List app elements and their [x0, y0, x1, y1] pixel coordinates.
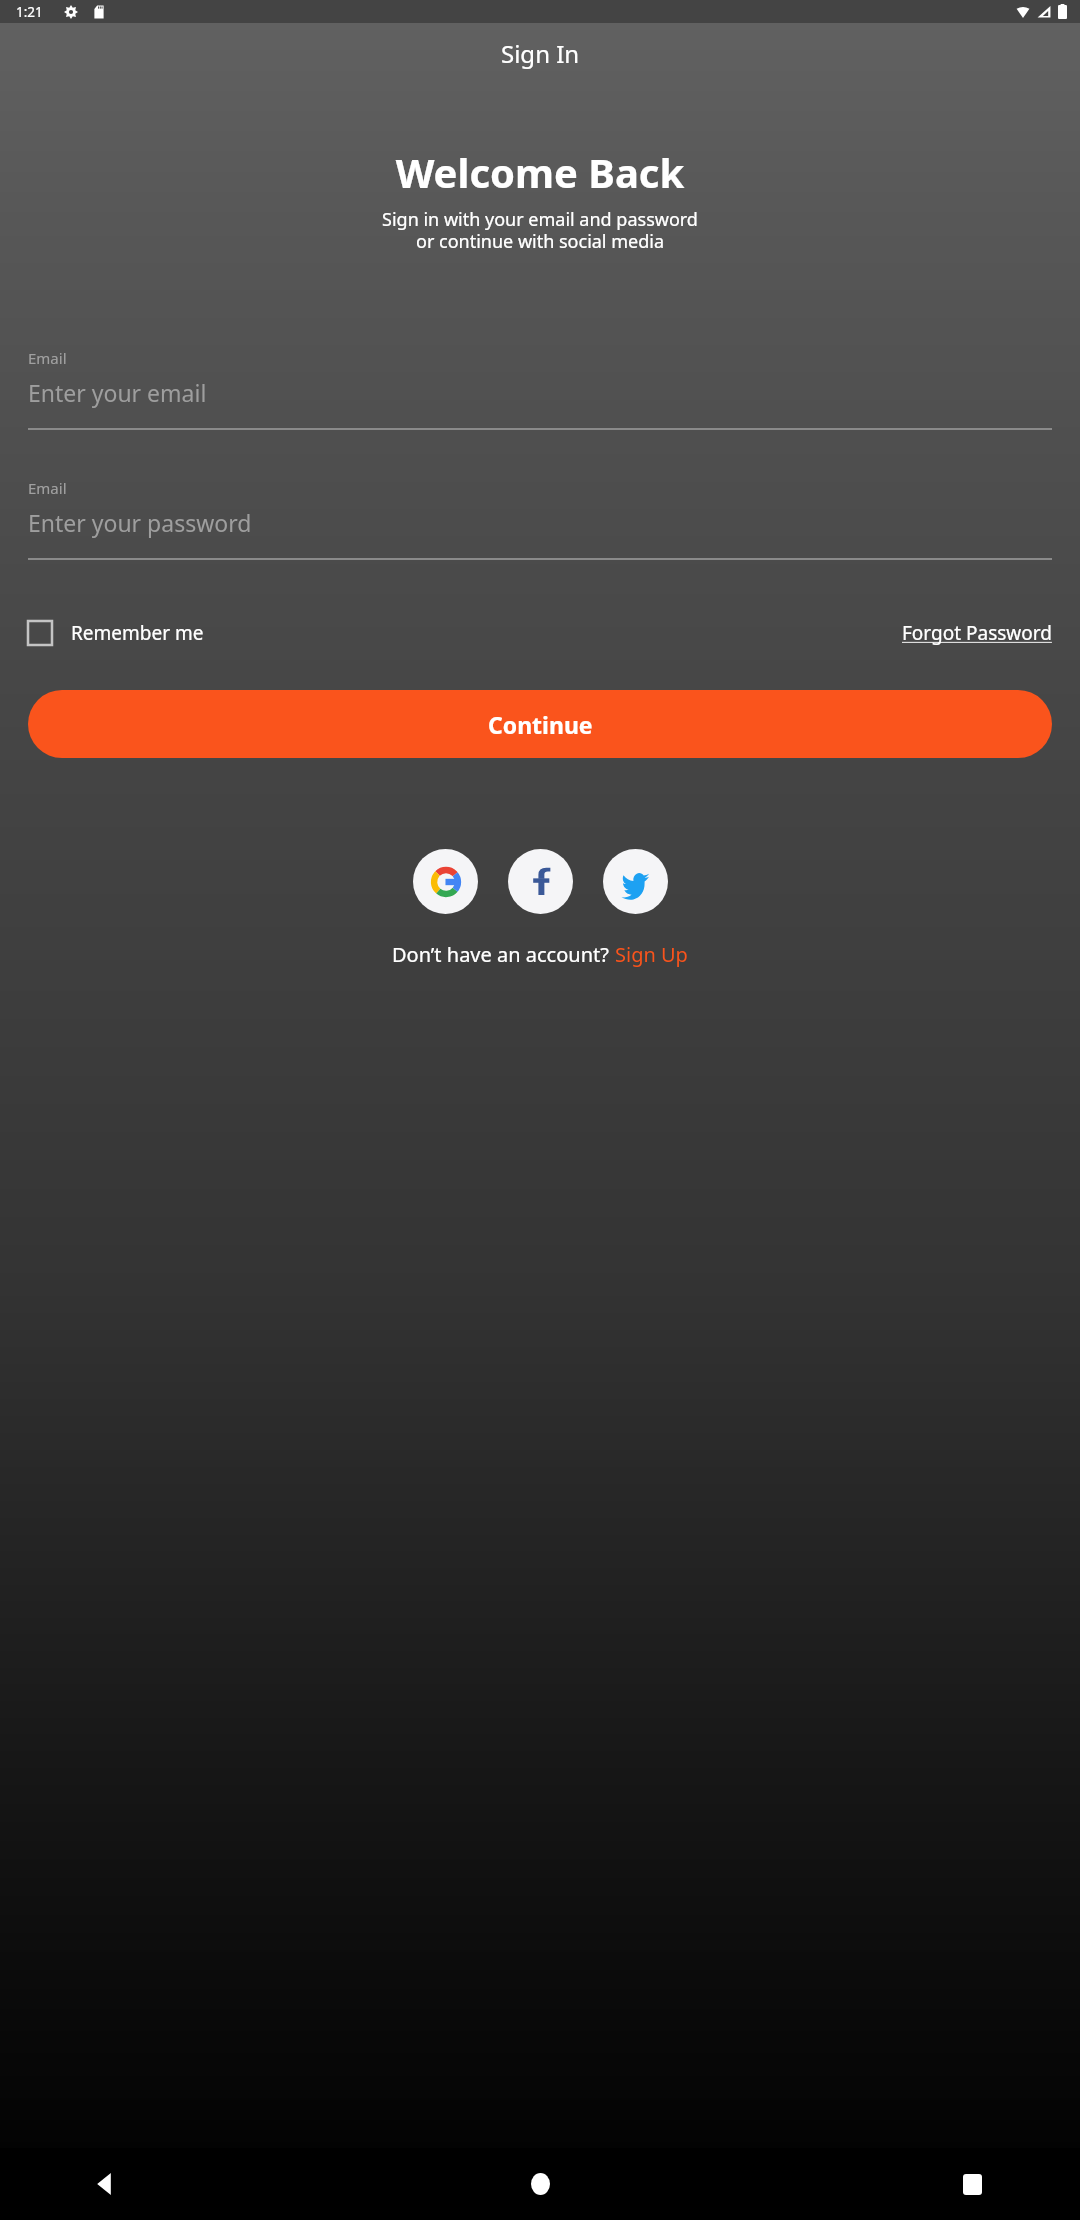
- button[interactable]: Forgot Password: [902, 620, 1052, 646]
- staticText: Email: [28, 348, 67, 368]
- staticText: 1:21: [16, 3, 43, 21]
- button[interactable]: Remember me: [28, 620, 204, 646]
- button[interactable]: Continue: [28, 690, 1052, 758]
- staticText: Sign Up: [615, 941, 688, 968]
- button[interactable]: Email: [28, 348, 1052, 430]
- staticText: Sign In: [501, 37, 580, 70]
- button[interactable]: Email: [28, 478, 1052, 560]
- staticText: Forgot Password: [902, 620, 1052, 646]
- staticText: Welcome Back: [0, 145, 1080, 199]
- staticText: Sign in with your email and password or …: [0, 207, 1080, 254]
- button[interactable]: Recents: [963, 2174, 982, 2195]
- button[interactable]: Sign Up: [615, 941, 688, 968]
- button[interactable]: Home: [531, 2173, 550, 2195]
- button[interactable]: Back: [95, 2173, 117, 2195]
- staticText: Don’t have an account?: [392, 941, 615, 968]
- button[interactable]: Sign in with Google: [413, 849, 478, 914]
- staticText: Enter your email: [28, 377, 207, 408]
- button[interactable]: Sign in with Twitter: [603, 849, 668, 914]
- staticText: Continue: [488, 709, 593, 740]
- staticText: Remember me: [71, 620, 204, 646]
- staticText: Email: [28, 478, 67, 498]
- staticText: Enter your password: [28, 507, 252, 538]
- button[interactable]: Sign in with Facebook: [508, 849, 573, 914]
